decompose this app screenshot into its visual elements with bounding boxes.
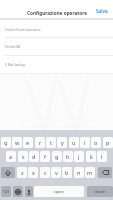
button[interactable]: g <box>52 151 62 162</box>
staticText: a <box>9 153 13 160</box>
button[interactable]: n <box>74 167 84 178</box>
button[interactable]: s <box>18 151 28 162</box>
staticText: n <box>77 169 81 176</box>
staticText: space <box>54 189 64 194</box>
button[interactable]: e <box>23 137 33 148</box>
staticText: t <box>50 139 52 146</box>
button[interactable]: k <box>86 151 96 162</box>
button[interactable]: j <box>74 151 84 162</box>
staticText: v <box>55 169 58 176</box>
button[interactable]: z <box>17 167 27 178</box>
staticText: m <box>87 169 93 176</box>
staticText: Codice Fiscale operatore <box>5 28 41 32</box>
staticText: Configurazione operatore <box>27 10 87 16</box>
staticText: r <box>39 139 42 146</box>
staticText: Salva <box>96 8 108 14</box>
staticText: p <box>106 139 110 146</box>
staticText: s <box>22 153 25 160</box>
button[interactable]: r <box>35 137 45 148</box>
button[interactable]: Codice Fiscale operatore <box>0 20 113 38</box>
staticText: E-Mail backup <box>5 63 26 67</box>
button[interactable]: Partita IVA <box>0 37 113 55</box>
button[interactable]: Dictation <box>25 186 33 197</box>
button[interactable]: w <box>12 137 22 148</box>
button[interactable]: q <box>1 137 11 148</box>
button[interactable]: E-Mail backup <box>0 55 113 73</box>
button[interactable]: v <box>51 167 61 178</box>
staticText: x <box>32 169 35 176</box>
staticText: k <box>90 153 93 160</box>
button[interactable]: space <box>34 186 84 197</box>
staticText: return <box>95 189 106 194</box>
staticText: d <box>32 153 36 160</box>
button[interactable]: y <box>57 137 67 148</box>
staticText: g <box>55 153 59 160</box>
staticText: b <box>65 169 69 176</box>
button[interactable]: f <box>40 151 50 162</box>
staticText: c <box>44 169 47 176</box>
staticText: u <box>72 139 76 146</box>
staticText: h <box>66 153 70 160</box>
button[interactable]: h <box>63 151 73 162</box>
button[interactable]: Backspace <box>98 167 112 178</box>
button[interactable]: return <box>87 186 113 197</box>
button[interactable]: l <box>97 151 107 162</box>
staticText: y <box>61 139 64 146</box>
button[interactable]: o <box>91 137 101 148</box>
button[interactable]: a <box>6 151 16 162</box>
button[interactable]: 123 <box>1 186 11 197</box>
staticText: e <box>26 139 30 146</box>
button[interactable]: m <box>85 167 95 178</box>
button[interactable]: Salva <box>91 6 113 16</box>
staticText: i <box>84 139 86 146</box>
staticText: j <box>78 153 80 160</box>
staticText: 123 <box>3 189 9 194</box>
button[interactable]: t <box>46 137 56 148</box>
button[interactable]: d <box>29 151 39 162</box>
button[interactable]: x <box>28 167 38 178</box>
button[interactable]: i <box>80 137 90 148</box>
button[interactable]: Shift <box>1 167 15 178</box>
staticText: l <box>101 153 103 160</box>
button[interactable]: p <box>103 137 113 148</box>
staticText: w <box>15 139 20 146</box>
staticText: z <box>21 169 24 176</box>
button[interactable]: b <box>62 167 72 178</box>
staticText: Partita IVA <box>5 45 21 49</box>
button[interactable]: c <box>40 167 50 178</box>
button[interactable]: Emoji keyboard <box>13 186 23 197</box>
button[interactable]: u <box>69 137 79 148</box>
staticText: o <box>94 139 98 146</box>
staticText: f <box>44 153 46 160</box>
staticText: q <box>4 139 8 146</box>
